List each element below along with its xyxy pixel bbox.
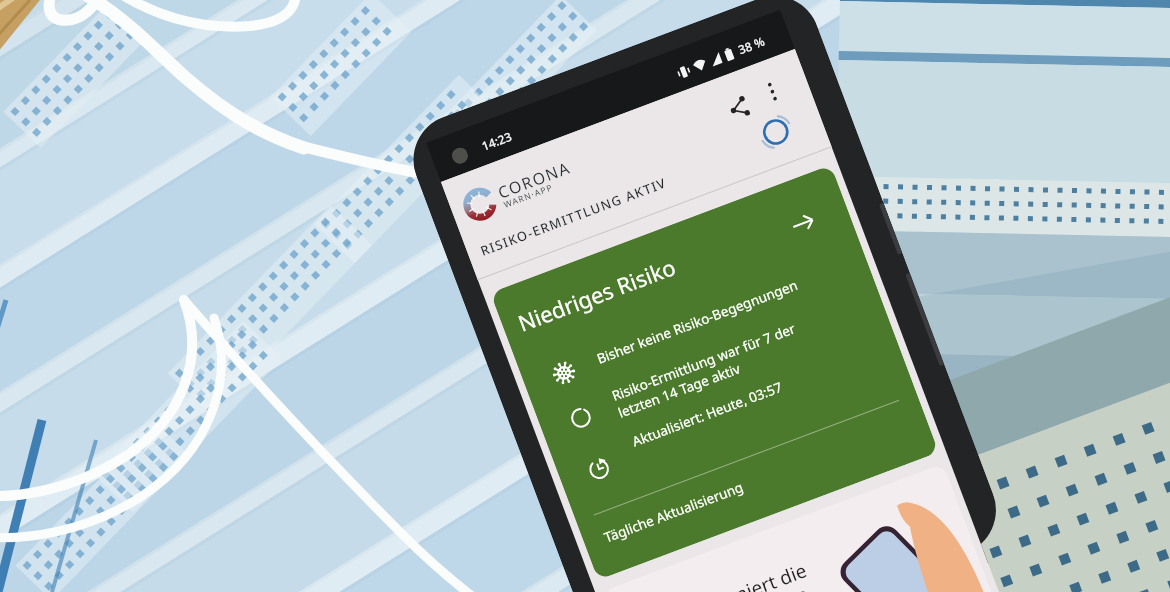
staticText: RISIKO-ERMITTLUNG AKTIV [478, 173, 669, 260]
staticText: 14:23 [479, 128, 514, 154]
staticText: Tägliche Aktualisierung [602, 478, 745, 547]
button[interactable]: Share [722, 91, 756, 124]
button[interactable]: Wie funktioniert die Corona-Warn-App? [602, 463, 1059, 592]
staticText: WARN·APP [502, 181, 555, 211]
staticText: CORONA [495, 156, 574, 204]
button[interactable]: Niedriges Risiko [490, 165, 939, 580]
staticText: Bisher keine Risiko-Begegnungen [594, 276, 800, 368]
staticText: Niedriges Risiko [513, 251, 679, 338]
staticText: 38 % [736, 32, 767, 57]
button[interactable]: More options [757, 76, 788, 107]
staticText: Aktualisiert: Heute, 03:57 [630, 378, 785, 451]
staticText: Risiko-Ermittlung war für 7 der letzten … [609, 319, 804, 422]
staticText: Wie funktioniert die Corona-Warn-App? [636, 557, 819, 592]
other: Risk details [788, 208, 819, 238]
